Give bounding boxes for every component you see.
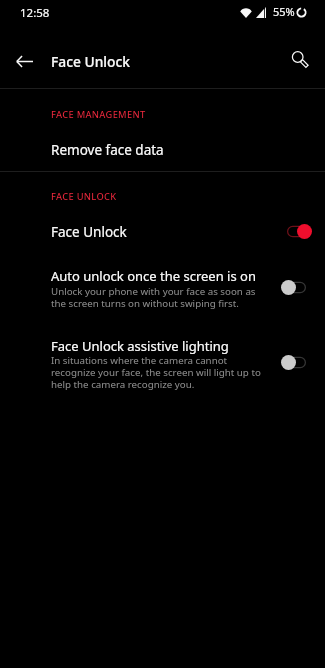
staticText: Unlock your phone with your face as soon… <box>51 285 256 310</box>
button[interactable]: Face Unlock <box>0 210 325 250</box>
staticText: Face Unlock <box>51 223 127 241</box>
button[interactable]: Toggle Face Unlock <box>287 224 312 239</box>
staticText: Face Unlock assistive lighting <box>51 337 229 355</box>
staticText: 12:58 <box>20 5 50 21</box>
button[interactable]: Auto unlock once the screen is on <box>0 259 325 319</box>
staticText: 55% <box>273 4 295 19</box>
staticText: FACE UNLOCK <box>51 190 117 203</box>
button[interactable]: Face Unlock assistive lighting <box>0 328 325 400</box>
button[interactable]: Back <box>8 45 40 77</box>
staticText: Auto unlock once the screen is on <box>51 267 256 285</box>
staticText: Face Unlock <box>51 52 130 71</box>
staticText: In situations where the camera cannot re… <box>51 354 261 391</box>
button[interactable]: Toggle auto unlock once the screen is on <box>281 280 306 295</box>
button[interactable]: Remove face data <box>0 128 325 170</box>
staticText: Remove face data <box>51 141 164 159</box>
button[interactable]: Toggle Face Unlock assistive lighting <box>281 355 306 370</box>
button[interactable]: Search <box>285 45 317 77</box>
staticText: FACE MANAGEMENT <box>51 108 146 121</box>
